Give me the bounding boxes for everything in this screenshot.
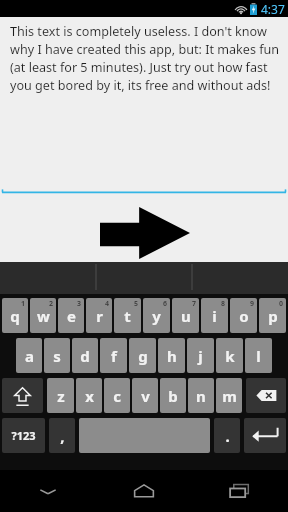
staticText: i xyxy=(212,306,217,326)
staticText: 7 xyxy=(192,299,197,309)
button[interactable]: . xyxy=(214,418,240,453)
button[interactable]: Shift xyxy=(2,378,43,413)
button[interactable]: e xyxy=(58,298,84,333)
staticText: 2 xyxy=(49,299,54,309)
staticText: n xyxy=(196,386,206,406)
staticText: 4 xyxy=(105,299,110,309)
staticText: ?123 xyxy=(11,428,36,443)
staticText: 8 xyxy=(221,299,226,309)
staticText: 3 xyxy=(77,299,82,309)
button[interactable]: n xyxy=(188,378,214,413)
button[interactable]: g xyxy=(129,338,156,373)
staticText: l xyxy=(256,346,261,366)
button[interactable]: b xyxy=(160,378,186,413)
staticText: g xyxy=(138,346,148,366)
staticText: e xyxy=(67,306,76,326)
staticText: h xyxy=(167,346,177,366)
staticText: m xyxy=(222,386,237,406)
staticText: s xyxy=(53,346,61,366)
staticText: k xyxy=(225,346,235,366)
button[interactable]: x xyxy=(76,378,102,413)
button[interactable]: f xyxy=(100,338,127,373)
staticText: This text is completely useless. I don't… xyxy=(10,23,280,94)
staticText: 0 xyxy=(279,299,284,309)
button[interactable]: h xyxy=(158,338,185,373)
button[interactable]: w xyxy=(30,298,56,333)
button[interactable]: q xyxy=(2,298,28,333)
button[interactable]: k xyxy=(216,338,243,373)
button[interactable]: l xyxy=(245,338,272,373)
button[interactable]: Back xyxy=(0,470,96,512)
button[interactable]: d xyxy=(72,338,98,373)
button[interactable]: v xyxy=(132,378,158,413)
staticText: y xyxy=(152,306,161,326)
staticText: a xyxy=(25,346,34,366)
staticText: 5 xyxy=(134,299,139,309)
staticText: r xyxy=(96,306,103,326)
staticText: 1 xyxy=(21,299,26,309)
staticText: q xyxy=(10,306,20,326)
button[interactable]: s xyxy=(44,338,70,373)
button[interactable]: p xyxy=(259,298,286,333)
staticText: w xyxy=(37,306,50,326)
button[interactable]: j xyxy=(187,338,214,373)
staticText: d xyxy=(80,346,90,366)
button[interactable]: y xyxy=(143,298,170,333)
button[interactable]: , xyxy=(49,418,75,453)
button[interactable]: r xyxy=(86,298,112,333)
staticText: v xyxy=(141,386,150,406)
button[interactable]: i xyxy=(201,298,228,333)
staticText: x xyxy=(85,386,94,406)
staticText: o xyxy=(239,306,249,326)
button[interactable]: z xyxy=(47,378,74,413)
staticText: 9 xyxy=(250,299,255,309)
staticText: u xyxy=(181,306,191,326)
button[interactable]: Recent apps xyxy=(192,470,288,512)
button[interactable]: Enter xyxy=(244,418,286,453)
button[interactable]: o xyxy=(230,298,257,333)
staticText: t xyxy=(124,306,131,326)
button[interactable]: m xyxy=(216,378,242,413)
button[interactable]: u xyxy=(172,298,199,333)
button[interactable]: Next xyxy=(100,207,190,259)
staticText: b xyxy=(168,386,178,406)
staticText: p xyxy=(268,306,278,326)
button[interactable]: Backspace xyxy=(246,378,286,413)
button[interactable]: t xyxy=(114,298,141,333)
staticText: c xyxy=(113,386,121,406)
staticText: 4:37 xyxy=(261,1,285,17)
staticText: . xyxy=(225,426,230,446)
staticText: f xyxy=(111,346,117,366)
button[interactable]: c xyxy=(104,378,130,413)
staticText: 6 xyxy=(163,299,168,309)
staticText: j xyxy=(198,346,203,366)
button[interactable]: a xyxy=(16,338,42,373)
staticText: z xyxy=(57,386,65,406)
staticText: , xyxy=(60,426,65,446)
button[interactable]: ?123 xyxy=(2,418,45,453)
button[interactable]: Home xyxy=(96,470,192,512)
